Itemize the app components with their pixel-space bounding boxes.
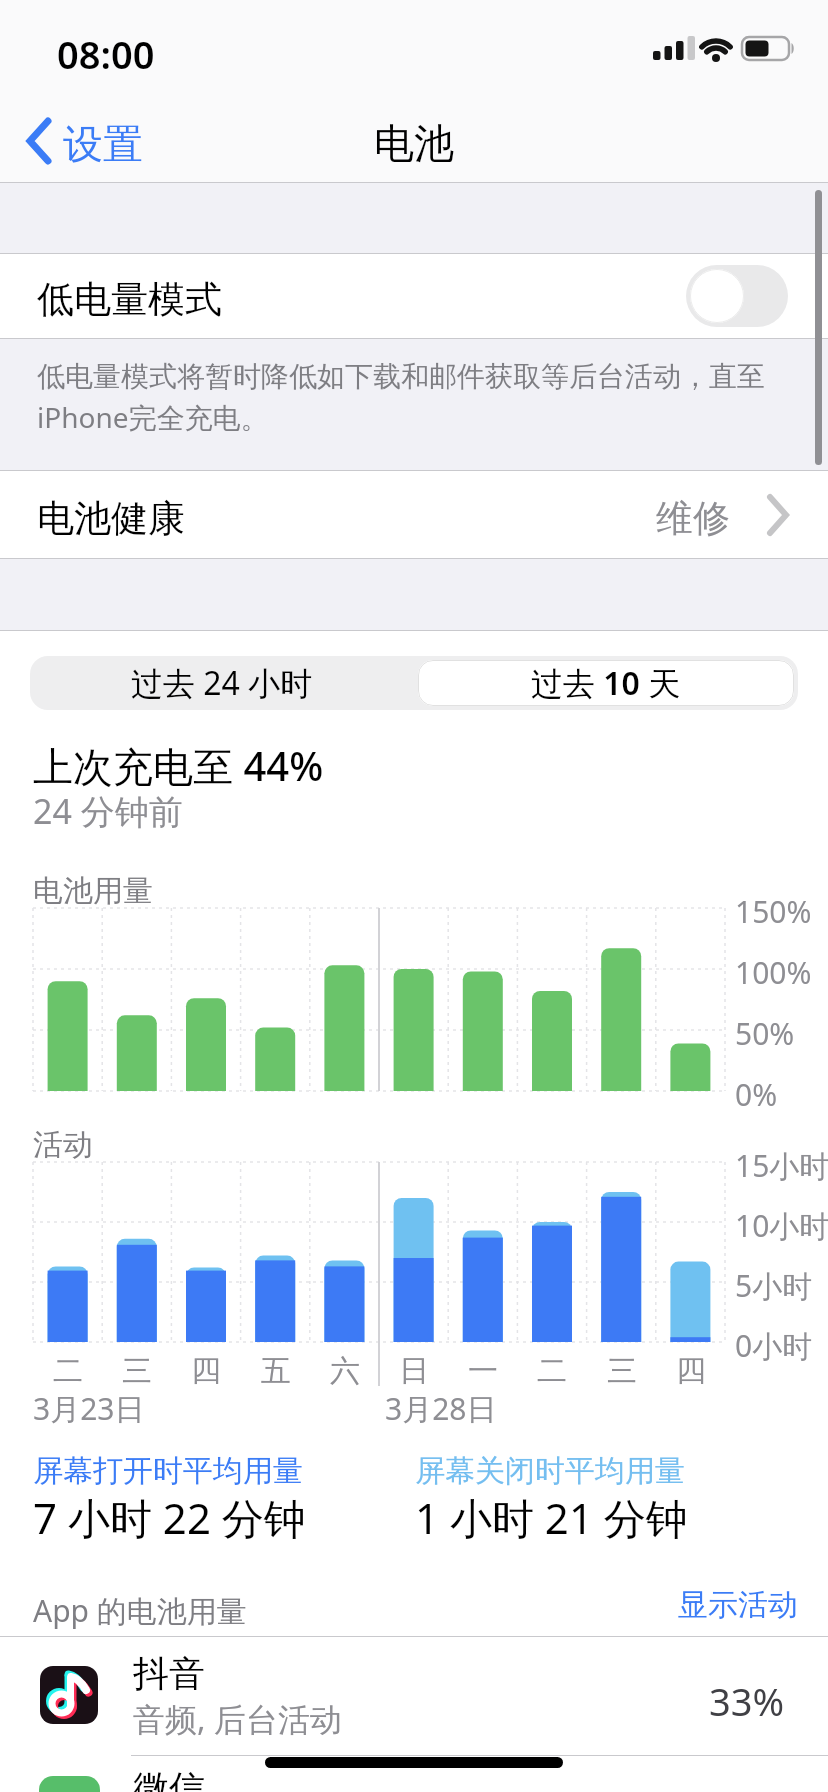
- staticText: 150%: [735, 891, 812, 932]
- staticText: 低电量模式: [37, 276, 222, 323]
- staticText: 屏幕关闭时平均用量: [415, 1452, 685, 1490]
- staticText: 0%: [735, 1074, 778, 1115]
- staticText: 音频, 后台活动: [133, 1697, 342, 1741]
- staticText: 7 小时 22 分钟: [33, 1489, 306, 1546]
- staticText: 50%: [735, 1013, 795, 1054]
- staticText: 1 小时 21 分钟: [415, 1489, 688, 1546]
- staticText: 33%: [709, 1675, 785, 1727]
- staticText: 100%: [735, 952, 812, 993]
- button[interactable]: 显示活动: [640, 1586, 798, 1624]
- staticText: 屏幕打开时平均用量: [33, 1452, 303, 1490]
- staticText: 10小时: [735, 1205, 828, 1246]
- button[interactable]: 过去 24 小时: [30, 656, 414, 710]
- staticText: 24 分钟前: [33, 788, 183, 834]
- staticText: 四: [676, 1352, 706, 1386]
- staticText: 3月28日: [385, 1388, 497, 1429]
- staticText: 五: [261, 1352, 291, 1386]
- button[interactable]: 抖音: [0, 1637, 828, 1755]
- staticText: 电池健康: [37, 495, 185, 542]
- staticText: 0小时: [735, 1325, 813, 1366]
- staticText: 一: [468, 1352, 498, 1386]
- staticText: 过去 10 天: [531, 661, 681, 705]
- staticText: App 的电池用量: [33, 1590, 247, 1631]
- staticText: 活动: [33, 1126, 93, 1164]
- button[interactable]: 低电量模式: [0, 254, 828, 338]
- staticText: 5小时: [735, 1265, 813, 1306]
- staticText: 电池: [374, 118, 454, 168]
- staticText: 维修: [656, 495, 730, 542]
- staticText: 微信: [133, 1766, 205, 1792]
- staticText: 四: [191, 1352, 221, 1386]
- staticText: 三: [607, 1352, 637, 1386]
- staticText: 三: [122, 1352, 152, 1386]
- button[interactable]: 电池健康: [0, 471, 828, 558]
- staticText: 显示活动: [678, 1586, 798, 1624]
- staticText: 低电量模式将暂时降低如下载和邮件获取等后台活动，直至 iPhone完全充电。: [37, 359, 765, 436]
- button[interactable]: 设置: [20, 112, 140, 172]
- staticText: 3月23日: [33, 1388, 145, 1429]
- staticText: 电池用量: [33, 872, 153, 910]
- staticText: 二: [537, 1352, 567, 1386]
- staticText: 抖音: [133, 1651, 205, 1696]
- staticText: 上次充电至 44%: [33, 738, 324, 793]
- staticText: 设置: [63, 119, 143, 169]
- button[interactable]: 过去 10 天: [418, 660, 794, 706]
- staticText: 过去 24 小时: [131, 661, 313, 705]
- staticText: 六: [330, 1352, 360, 1386]
- staticText: 08:00: [57, 28, 155, 80]
- staticText: 15小时: [735, 1145, 828, 1186]
- staticText: 日: [399, 1352, 429, 1386]
- staticText: 二: [53, 1352, 83, 1386]
